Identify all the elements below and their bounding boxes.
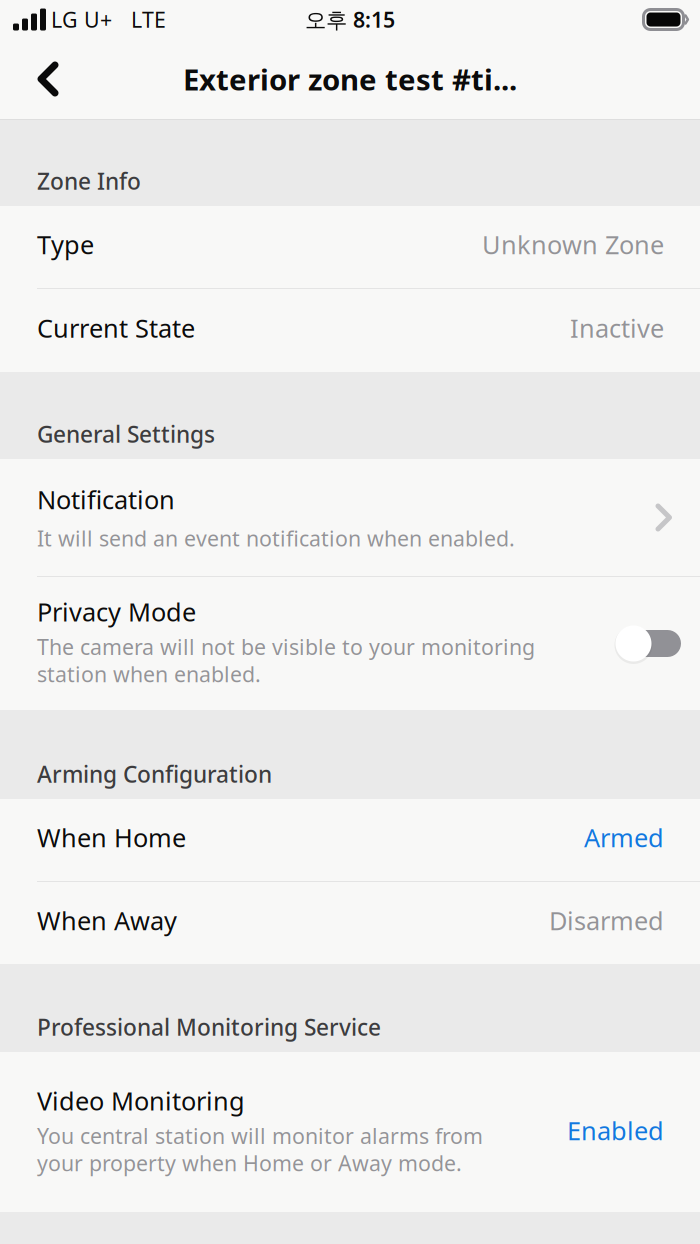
staticText: Video Monitoring [37, 1084, 245, 1117]
staticText: Arming Configuration [37, 759, 272, 789]
staticText: When Home [37, 821, 186, 854]
button[interactable]: Current State [0, 289, 700, 372]
staticText: Unknown Zone [482, 228, 664, 261]
staticText: Privacy Mode [37, 595, 196, 628]
button[interactable]: Privacy Mode [0, 577, 700, 710]
button[interactable]: Video Monitoring [0, 1052, 700, 1212]
staticText: Exterior zone test #ti... [183, 59, 517, 98]
staticText: The camera will not be visible to your m… [37, 632, 535, 661]
staticText: Zone Info [37, 166, 141, 196]
staticText: Disarmed [549, 904, 664, 937]
staticText: General Settings [37, 419, 215, 449]
button[interactable]: Back [17, 48, 79, 110]
button[interactable]: Type [0, 206, 700, 288]
staticText: LG U+ [51, 5, 112, 34]
button[interactable]: When Away [0, 882, 700, 964]
button[interactable]: Notification [0, 459, 700, 576]
staticText: Type [37, 228, 94, 261]
staticText: You central station will monitor alarms … [37, 1121, 483, 1150]
staticText: Enabled [567, 1114, 664, 1147]
staticText: It will send an event notification when … [37, 524, 515, 552]
staticText: Inactive [570, 311, 664, 345]
staticText: Current State [37, 311, 195, 345]
staticText: 오후 8:15 [305, 5, 395, 34]
staticText: station when enabled. [37, 660, 261, 688]
staticText: Notification [37, 482, 175, 516]
staticText: your property when Home or Away mode. [37, 1149, 462, 1177]
staticText: Professional Monitoring Service [37, 1012, 381, 1042]
staticText: When Away [37, 904, 177, 937]
button[interactable]: When Home [0, 799, 700, 881]
staticText: LTE [131, 5, 166, 34]
staticText: Armed [584, 821, 664, 854]
